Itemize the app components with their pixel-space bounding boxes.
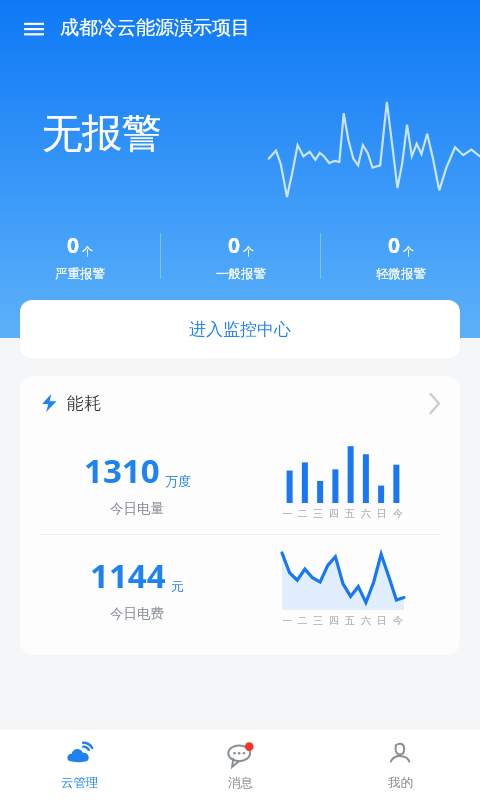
staticText: 1310 — [84, 448, 160, 493]
staticText: 一般报警 — [216, 266, 266, 282]
staticText: 三 — [310, 614, 326, 627]
staticText: 我的 — [388, 775, 413, 791]
staticText: 今 — [390, 507, 406, 520]
staticText: 0 — [388, 231, 401, 260]
staticText: 严重报警 — [55, 266, 105, 282]
staticText: 日 — [374, 507, 390, 520]
button[interactable]: 进入监控中心 — [20, 300, 460, 358]
staticText: 三 — [310, 507, 326, 520]
staticText: 四 — [326, 614, 342, 627]
staticText: 0 — [67, 231, 80, 260]
staticText: 今日电量 — [110, 500, 164, 517]
staticText: 1144 — [90, 553, 166, 598]
staticText: 二 — [295, 507, 310, 520]
button[interactable]: Menu — [20, 14, 48, 42]
staticText: 今日电费 — [110, 605, 164, 622]
staticText: 六 — [358, 614, 374, 627]
staticText: 个 — [403, 244, 414, 258]
staticText: 个 — [243, 244, 254, 258]
staticText: 五 — [342, 507, 358, 520]
staticText: 今 — [390, 614, 406, 627]
staticText: 轻微报警 — [376, 266, 426, 282]
staticText: 0 — [228, 231, 241, 260]
button[interactable]: 我的 — [320, 730, 480, 800]
button[interactable]: 0 — [321, 231, 480, 282]
staticText: 消息 — [228, 775, 253, 791]
button[interactable]: 0 — [0, 231, 160, 282]
staticText: 一 — [280, 507, 295, 520]
staticText: 元 — [171, 578, 184, 594]
staticText: 能耗 — [67, 393, 101, 414]
staticText: 六 — [358, 507, 374, 520]
staticText: 四 — [326, 507, 342, 520]
staticText: 二 — [295, 614, 310, 627]
staticText: 进入监控中心 — [189, 319, 291, 340]
button[interactable]: 云管理 — [0, 730, 160, 800]
staticText: 万度 — [165, 473, 191, 489]
staticText: 个 — [82, 244, 93, 258]
staticText: 一 — [280, 614, 295, 627]
staticText: 成都冷云能源演示项目 — [60, 16, 250, 40]
staticText: 云管理 — [61, 775, 99, 791]
button[interactable]: 能耗 — [20, 376, 460, 655]
button[interactable]: 消息 — [160, 730, 320, 800]
button[interactable]: 0 — [161, 231, 320, 282]
staticText: 无报警 — [42, 108, 162, 158]
staticText: 日 — [374, 614, 390, 627]
staticText: 五 — [342, 614, 358, 627]
